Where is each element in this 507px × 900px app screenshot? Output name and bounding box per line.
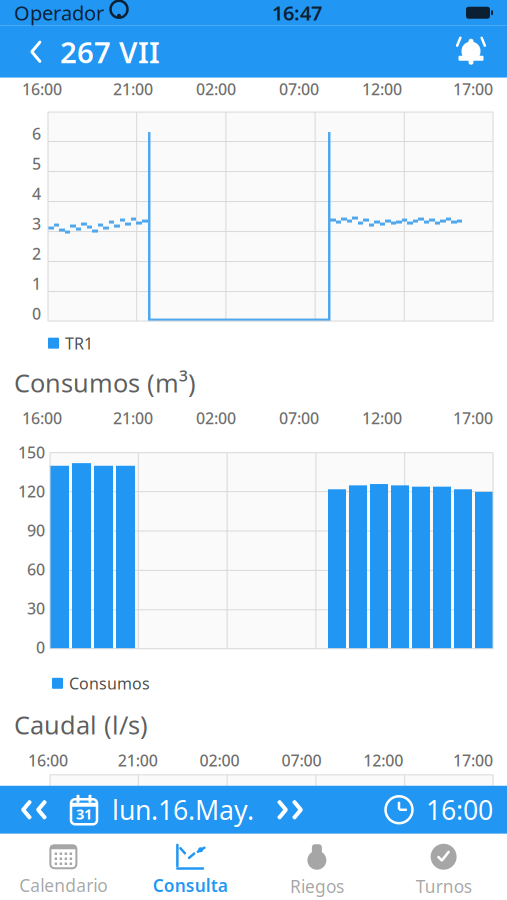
staticText: 0 [32, 303, 41, 324]
staticText: 31 [76, 804, 92, 823]
staticText: 17:00 [453, 750, 493, 771]
staticText: lun.16.May. [112, 792, 254, 827]
staticText: Presión (bar) [14, 37, 166, 70]
staticText: 12:00 [362, 407, 402, 429]
staticText: Consulta [153, 874, 228, 897]
staticText: 90 [27, 520, 45, 541]
staticText: 12:00 [362, 78, 402, 99]
staticText: 267 VII [60, 32, 160, 71]
staticText: 02:00 [196, 78, 236, 99]
staticText: 07:00 [279, 78, 319, 99]
staticText: 16:00 [22, 407, 62, 429]
staticText: 21:00 [113, 78, 153, 99]
staticText: 21:00 [113, 407, 153, 429]
button[interactable]: Notifications [443, 26, 499, 78]
staticText: 16:00 [28, 750, 68, 771]
staticText: 02:00 [200, 750, 240, 771]
staticText: 21:00 [118, 750, 158, 771]
staticText: 17:00 [453, 407, 493, 429]
button[interactable]: Riegos [253, 841, 380, 899]
button[interactable]: Consulta [127, 841, 254, 899]
button[interactable]: Previous day [6, 786, 62, 834]
staticText: 1 [32, 273, 41, 294]
button[interactable]: Calendario [0, 841, 127, 899]
staticText: TR1 [65, 333, 93, 354]
staticText: Consumos [69, 673, 150, 694]
staticText: 3 [32, 213, 41, 234]
staticText: Operador [14, 0, 104, 26]
staticText: 150 [18, 442, 45, 463]
staticText: 17:00 [453, 78, 493, 99]
staticText: 30 [27, 598, 45, 619]
staticText: Calendario [19, 874, 107, 897]
staticText: 2 [32, 243, 41, 264]
button[interactable]: Turnos [380, 841, 507, 899]
button[interactable]: Back [12, 26, 60, 78]
button[interactable]: Next day [260, 786, 320, 834]
staticText: 16:00 [426, 792, 493, 827]
staticText: 02:00 [196, 407, 236, 429]
staticText: 5 [32, 153, 41, 174]
staticText: Consumos (m³) [14, 366, 196, 399]
staticText: 120 [18, 481, 45, 502]
staticText: 07:00 [281, 750, 321, 771]
staticText: Caudal (l/s) [14, 708, 148, 741]
staticText: 16:47 [272, 0, 322, 26]
staticText: 07:00 [279, 407, 319, 429]
staticText: 60 [27, 559, 45, 580]
staticText: 6 [32, 123, 41, 144]
staticText: 0 [36, 637, 45, 658]
staticText: 12:00 [363, 750, 403, 771]
staticText: 4,4 [23, 811, 45, 832]
button[interactable]: 31 [62, 786, 260, 834]
staticText: Riegos [290, 875, 344, 898]
staticText: 4 [32, 183, 41, 204]
staticText: Turnos [416, 875, 472, 898]
button[interactable]: 16:00 [384, 786, 493, 834]
staticText: 16:00 [22, 78, 62, 99]
